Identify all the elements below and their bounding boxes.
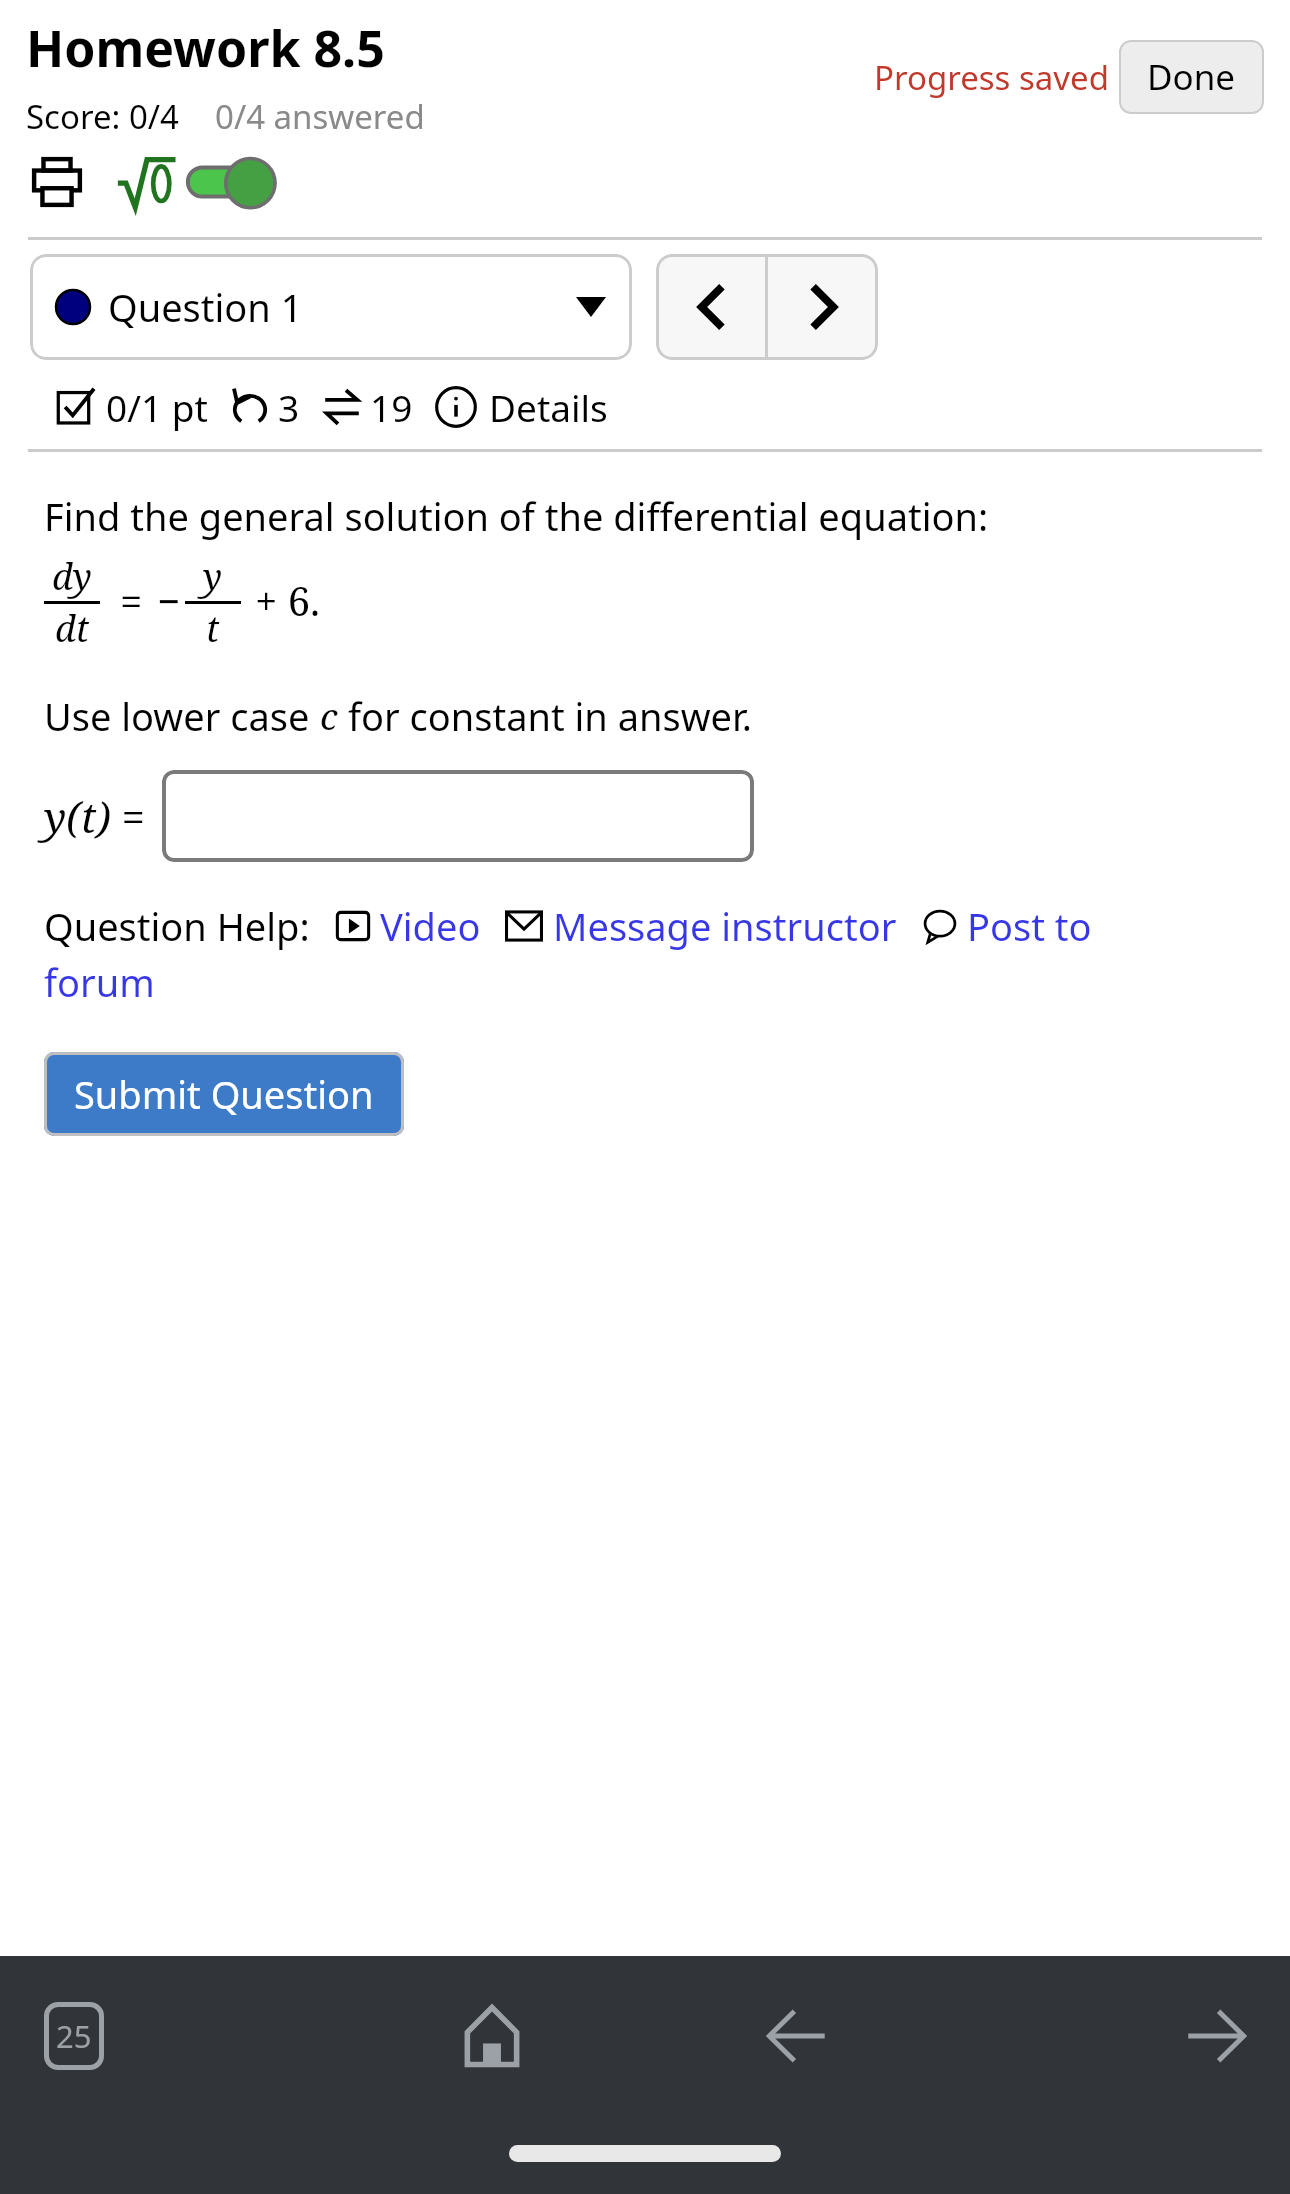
button[interactable]: Forward xyxy=(1176,1996,1256,2076)
button[interactable]: Submit Question xyxy=(44,1052,404,1136)
staticText: 3 xyxy=(278,382,300,432)
staticText: Post to xyxy=(967,900,1092,952)
button[interactable]: Math editor toggle xyxy=(116,154,278,210)
button[interactable]: Tabs, 25 open xyxy=(34,1996,114,2076)
button[interactable]: Post to xyxy=(923,900,1092,952)
staticText: Question 1 xyxy=(108,281,303,333)
staticText: for constant in answer. xyxy=(338,690,752,742)
staticText: forum xyxy=(44,956,155,1008)
button[interactable]: Home xyxy=(452,1996,532,2076)
staticText: Find the general solution of the differe… xyxy=(44,490,989,542)
staticText: y xyxy=(203,552,223,601)
staticText: + 6. xyxy=(255,573,321,627)
staticText: Submit Question xyxy=(74,1068,374,1120)
staticText: Homework 8.5 xyxy=(26,14,385,82)
button[interactable]: Previous question xyxy=(656,254,765,360)
staticText: 0/1 pt xyxy=(106,382,208,432)
button[interactable]: Print xyxy=(26,153,88,211)
staticText: Progress saved xyxy=(874,55,1109,100)
staticText: dy xyxy=(52,552,92,601)
staticText: 19 xyxy=(370,382,413,432)
staticText: Video xyxy=(380,900,481,952)
button[interactable]: Details xyxy=(435,382,608,432)
staticText: − xyxy=(157,573,181,627)
button[interactable]: Back xyxy=(757,1996,837,2076)
staticText: 0/4 answered xyxy=(215,94,425,139)
staticText: c xyxy=(320,692,338,741)
staticText: 25 xyxy=(56,2015,92,2057)
button[interactable]: Done xyxy=(1119,40,1264,114)
button[interactable]: Message instructor xyxy=(505,900,897,952)
button[interactable]: Question 1 xyxy=(30,254,632,360)
staticText: dt xyxy=(55,604,90,648)
button[interactable]: Video xyxy=(336,900,481,952)
staticText: Score: 0/4 xyxy=(26,94,179,139)
staticText: t xyxy=(206,604,220,648)
button[interactable]: Answer input xyxy=(162,770,754,862)
staticText: Message instructor xyxy=(553,900,897,952)
button[interactable]: Next question xyxy=(768,254,878,360)
staticText: Question Help: xyxy=(44,900,310,952)
staticText: = xyxy=(120,573,143,627)
staticText: y(t) = xyxy=(44,788,146,845)
staticText: Use lower case xyxy=(44,690,320,742)
staticText: Done xyxy=(1147,53,1236,101)
staticText: Details xyxy=(489,382,608,432)
